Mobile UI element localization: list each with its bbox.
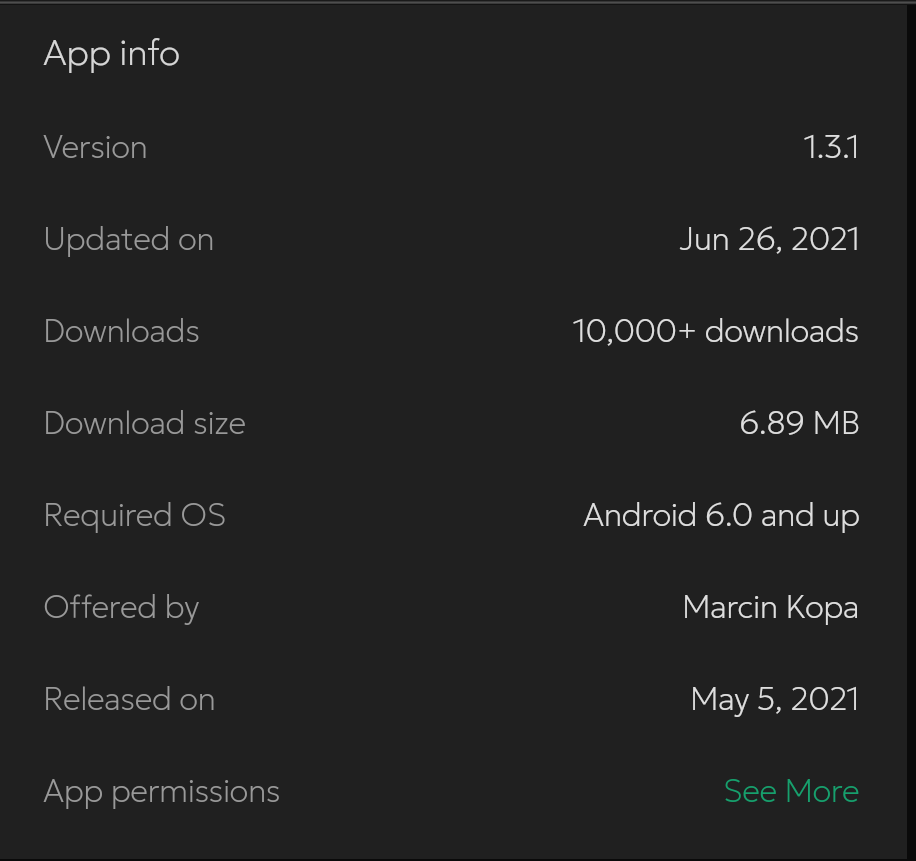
staticText: Updated on: [43, 219, 215, 259]
staticText: Version: [43, 127, 148, 167]
staticText: App permissions: [43, 771, 281, 811]
staticText: Required OS: [43, 495, 226, 535]
button[interactable]: Download size: [0, 377, 907, 469]
staticText: Offered by: [43, 587, 199, 627]
staticText: See More: [723, 771, 860, 811]
staticText: Marcin Kopa: [682, 587, 860, 627]
staticText: Download size: [43, 403, 246, 443]
button[interactable]: Offered by: [0, 561, 907, 653]
button[interactable]: Required OS: [0, 469, 907, 561]
staticText: 10,000+ downloads: [573, 311, 860, 351]
staticText: May 5, 2021: [690, 679, 860, 719]
button[interactable]: Version: [0, 101, 907, 193]
staticText: 6.89 MB: [739, 403, 860, 443]
staticText: Jun 26, 2021: [679, 219, 860, 259]
staticText: App info: [43, 30, 180, 75]
button[interactable]: Updated on: [0, 193, 907, 285]
staticText: Downloads: [43, 311, 200, 351]
staticText: 1.3.1: [804, 127, 860, 167]
staticText: Android 6.0 and up: [583, 495, 860, 535]
button[interactable]: Downloads: [0, 285, 907, 377]
staticText: Released on: [43, 679, 216, 719]
button[interactable]: App permissions: [0, 745, 907, 837]
button[interactable]: Released on: [0, 653, 907, 745]
